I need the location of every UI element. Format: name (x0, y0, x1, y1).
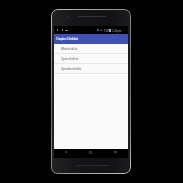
button[interactable]: Recent apps (103, 149, 128, 155)
button[interactable]: Home (78, 149, 103, 155)
button[interactable]: Operation in linklist (54, 64, 128, 74)
button[interactable]: Chapter 4 LinkList (54, 34, 128, 44)
staticText: What is LinkList (61, 47, 78, 51)
staticText: Types of LinkList (61, 57, 78, 61)
button[interactable]: What is LinkList (54, 44, 128, 54)
staticText: Chapter 4 LinkList (56, 37, 78, 41)
staticText: Operation in linklist (61, 67, 82, 71)
staticText: 1:24 pm (112, 29, 122, 33)
staticText: 100% (104, 29, 111, 33)
button[interactable]: Types of LinkList (54, 54, 128, 64)
button[interactable]: Back (54, 149, 78, 155)
